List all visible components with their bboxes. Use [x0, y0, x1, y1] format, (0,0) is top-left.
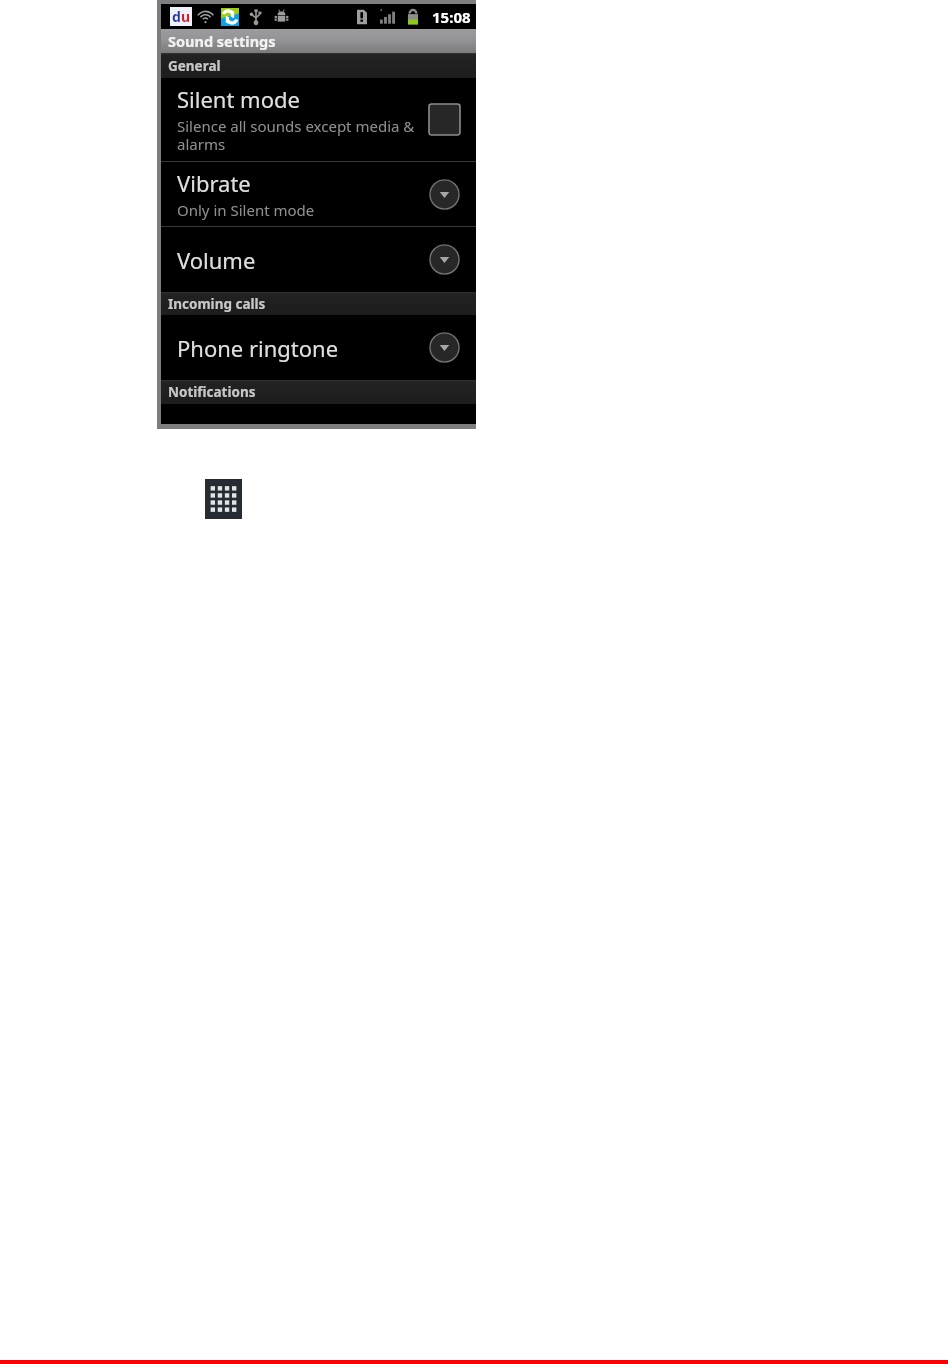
staticText: u — [181, 7, 191, 26]
button[interactable]: Phone ringtone — [161, 315, 476, 380]
staticText: Phone ringtone — [177, 333, 339, 363]
button[interactable]: Silent mode checkbox — [429, 104, 460, 135]
staticText: Sound settings — [168, 31, 276, 51]
staticText: Only in Silent mode — [177, 200, 315, 220]
button[interactable]: Silent mode — [161, 78, 476, 161]
staticText: 15:08 — [432, 7, 471, 27]
staticText: d — [172, 7, 181, 26]
staticText: Incoming calls — [168, 295, 266, 313]
staticText: General — [168, 57, 221, 75]
button[interactable]: Vibrate — [161, 162, 476, 226]
staticText: Vibrate — [177, 168, 251, 198]
staticText: Volume — [177, 245, 256, 275]
button[interactable]: Open Volume — [429, 244, 460, 275]
button[interactable]: Volume — [161, 227, 476, 292]
staticText: Silence all sounds except media & alarms — [177, 116, 423, 155]
button[interactable]: Open Phone ringtone — [429, 332, 460, 363]
button[interactable]: Open Vibrate — [429, 179, 460, 210]
staticText: Notifications — [168, 383, 256, 401]
staticText: Silent mode — [177, 84, 300, 114]
button[interactable]: All apps — [205, 479, 242, 519]
